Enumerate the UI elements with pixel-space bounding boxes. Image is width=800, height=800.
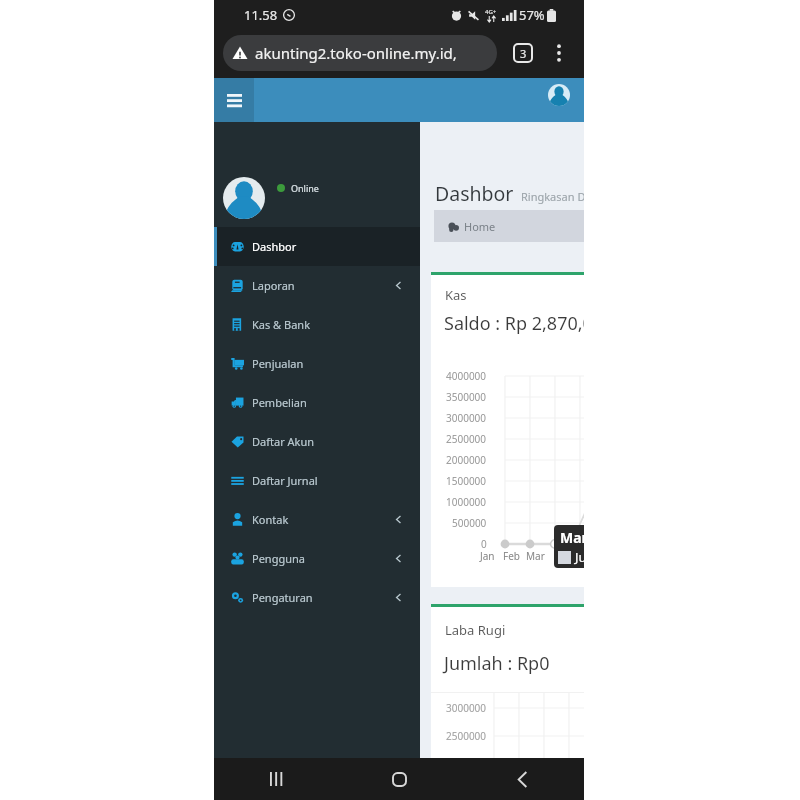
staticText: Saldo : Rp 2,870,0	[444, 311, 584, 336]
staticText: 3000000	[446, 411, 487, 425]
staticText: 2000000	[446, 453, 487, 467]
staticText: Home	[464, 219, 496, 234]
button[interactable]: Pengguna	[214, 539, 420, 578]
staticText: Pengaturan	[252, 590, 313, 605]
button[interactable]: Home	[434, 210, 584, 242]
button[interactable]: Kas & Bank	[214, 305, 420, 344]
staticText: Ju	[575, 548, 584, 566]
staticText: 4G+	[485, 8, 497, 16]
staticText: 3	[520, 46, 527, 61]
staticText: 0	[481, 537, 487, 551]
staticText: Penjualan	[252, 356, 304, 371]
staticText: 4000000	[446, 369, 487, 383]
staticText: Feb	[503, 549, 520, 563]
staticText: Laporan	[252, 278, 295, 293]
staticText: Dashbor	[435, 180, 514, 207]
staticText: Dashbor	[252, 239, 297, 254]
staticText: Laba Rugi	[445, 621, 506, 639]
staticText: Pembelian	[252, 395, 307, 410]
staticText: Online	[291, 182, 319, 194]
button[interactable]: Daftar Akun	[214, 422, 420, 461]
button[interactable]: Tabs	[512, 42, 534, 64]
staticText: 500000	[452, 516, 487, 530]
staticText: Jan	[480, 549, 495, 563]
button[interactable]: Account	[548, 84, 570, 106]
button[interactable]: Home	[338, 758, 461, 800]
staticText: akunting2.toko-online.my.id,	[255, 43, 457, 63]
button[interactable]: Pembelian	[214, 383, 420, 422]
staticText: Jumlah : Rp0	[444, 651, 550, 676]
button[interactable]: Pengaturan	[214, 578, 420, 617]
staticText: Kas	[445, 286, 467, 304]
staticText: 3500000	[446, 390, 487, 404]
staticText: Kas & Bank	[252, 317, 311, 332]
staticText: Daftar Jurnal	[252, 473, 318, 488]
button[interactable]: Back	[461, 758, 584, 800]
button[interactable]: Kontak	[214, 500, 420, 539]
button[interactable]: More options	[548, 42, 570, 64]
staticText: 1000000	[446, 495, 487, 509]
button[interactable]	[223, 177, 265, 219]
button[interactable]: Recents	[214, 758, 338, 800]
staticText: Mar	[560, 528, 584, 547]
button[interactable]: Laporan	[214, 266, 420, 305]
staticText: 2500000	[446, 432, 487, 446]
staticText: 11.58	[244, 6, 278, 24]
staticText: Kontak	[252, 512, 289, 527]
staticText: 3000000	[446, 701, 487, 715]
staticText: 57%	[519, 6, 545, 24]
staticText: Ringkasan D	[521, 189, 584, 204]
button[interactable]: akunting2.toko-online.my.id,	[223, 35, 497, 71]
staticText: 2500000	[446, 729, 487, 743]
button[interactable]: Penjualan	[214, 344, 420, 383]
button[interactable]: Daftar Jurnal	[214, 461, 420, 500]
button[interactable]: Menu	[214, 78, 254, 122]
staticText: Daftar Akun	[252, 434, 315, 449]
button[interactable]: Dashbor	[214, 227, 420, 266]
staticText: Mar	[526, 549, 545, 563]
staticText: Pengguna	[252, 551, 305, 566]
staticText: 1500000	[446, 474, 487, 488]
